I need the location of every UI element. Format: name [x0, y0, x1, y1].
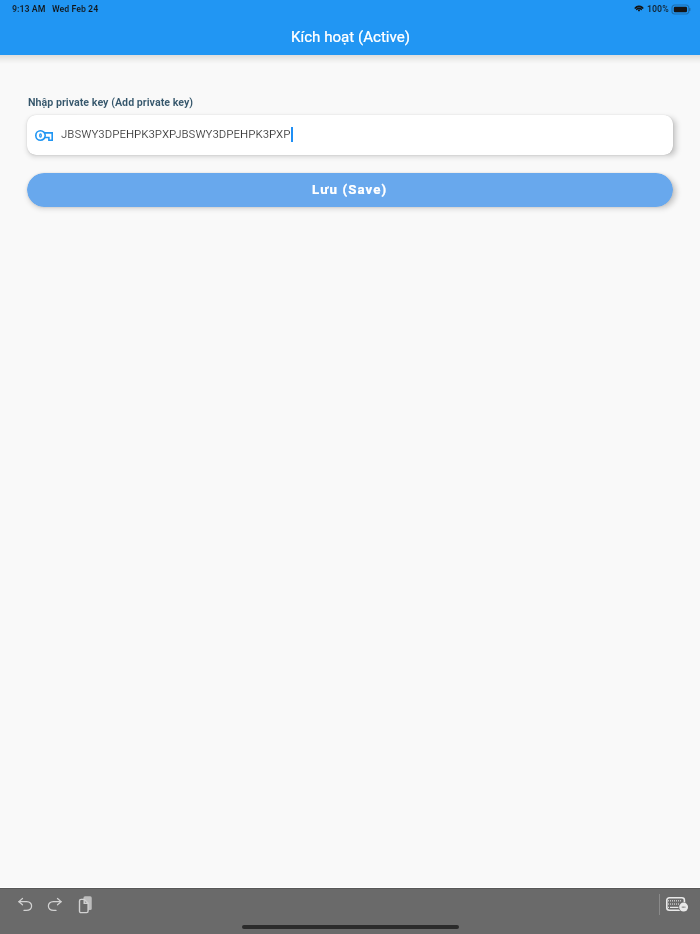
- staticText: Kích hoạt (Active): [291, 28, 410, 46]
- button[interactable]: Undo: [14, 891, 36, 917]
- staticText: JBSWY3DPEHPK3PXPJBSWY3DPEHPK3PXP: [61, 127, 291, 140]
- staticText: Nhập private key (Add private key): [28, 96, 194, 109]
- staticText: 9:13 AM Wed Feb 24: [12, 4, 99, 14]
- button[interactable]: Lưu (Save): [27, 173, 673, 207]
- button[interactable]: Hide keyboard: [666, 891, 688, 917]
- button[interactable]: Redo: [43, 891, 65, 917]
- staticText: Lưu (Save): [312, 182, 388, 198]
- staticText: 100%: [647, 4, 669, 14]
- button[interactable]: Paste: [74, 891, 96, 917]
- button[interactable]: JBSWY3DPEHPK3PXPJBSWY3DPEHPK3PXP: [27, 115, 673, 155]
